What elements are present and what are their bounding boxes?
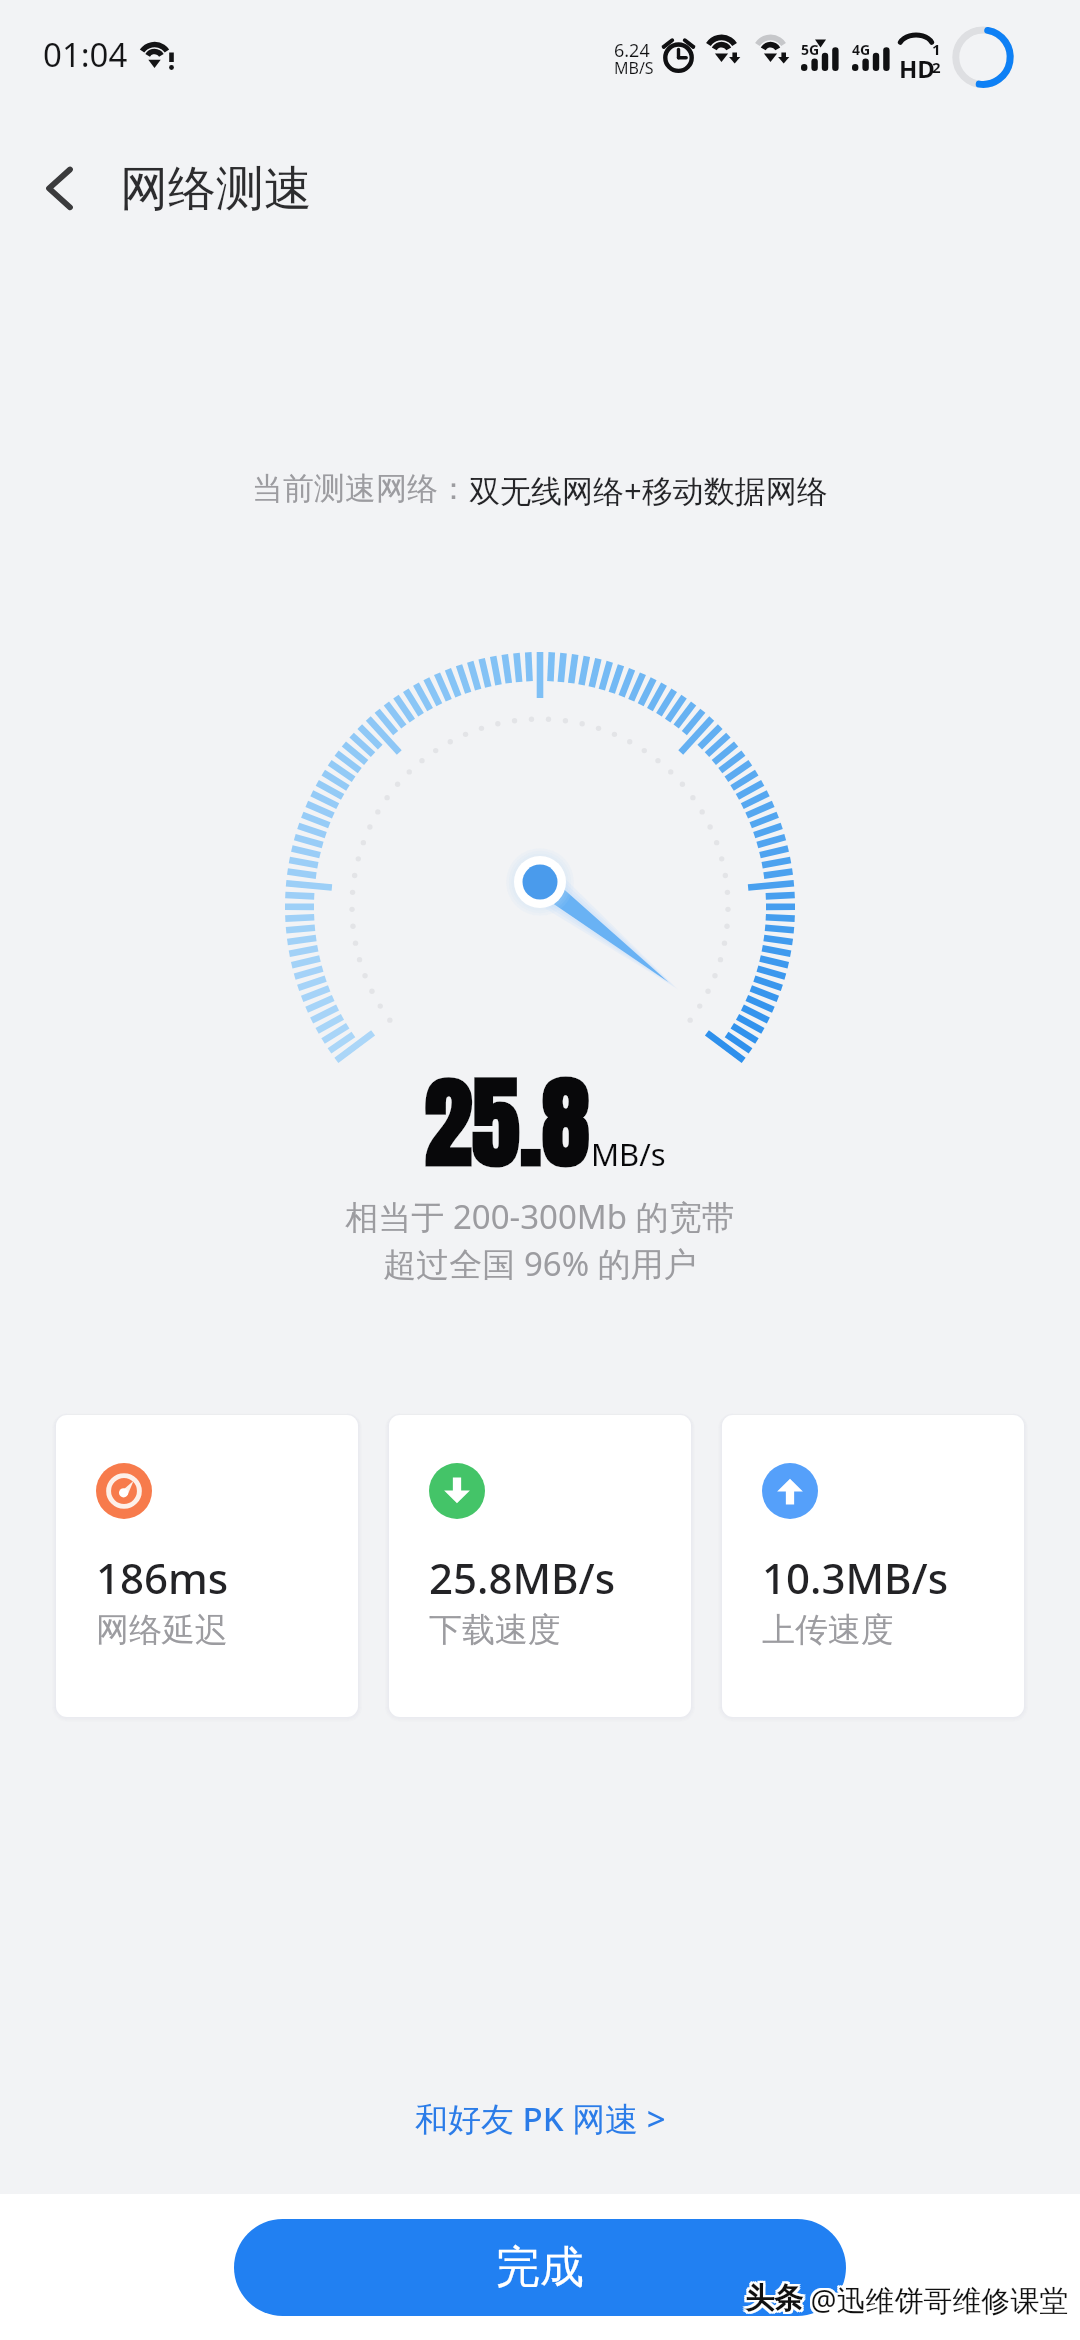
staticText: @迅维饼哥维修课堂 <box>801 2280 1067 2320</box>
button[interactable]: 和好友 PK 网速 > <box>0 2065 1080 2171</box>
staticText: 头条 <box>747 2282 805 2319</box>
staticText: 01:04 <box>43 32 128 77</box>
staticText: 相当于 200-300Mb 的宽带 超过全国 96% 的用户 <box>0 1194 1080 1286</box>
staticText: @迅维饼哥维修课堂 <box>803 2280 1069 2320</box>
staticText: 上传速度 <box>762 1609 894 1651</box>
staticText: 和好友 PK 网速 > <box>415 2096 666 2141</box>
staticText: MB/S <box>614 57 654 79</box>
staticText: @迅维饼哥维修课堂 <box>803 2278 1069 2318</box>
staticText: 头条 <box>747 2280 805 2317</box>
button[interactable]: Back <box>8 128 112 248</box>
staticText: 完成 <box>496 2240 584 2295</box>
staticText: 2 <box>932 57 941 77</box>
staticText: 网络延迟 <box>96 1609 228 1651</box>
staticText: 25.8 <box>424 1048 590 1198</box>
staticText: @迅维饼哥维修课堂 <box>805 2278 1071 2318</box>
staticText: 头条 <box>745 2280 803 2317</box>
staticText: MB/s <box>591 1133 666 1175</box>
staticText: @迅维饼哥维修课堂 <box>805 2280 1071 2320</box>
staticText: 网络测速 <box>120 159 312 219</box>
button[interactable]: 10.3MB/s <box>722 1415 1024 1717</box>
staticText: 6.24 <box>614 38 650 63</box>
staticText: @迅维饼哥维修课堂 <box>803 2282 1069 2322</box>
staticText: 4G <box>852 40 871 59</box>
staticText: 下载速度 <box>429 1609 561 1651</box>
button[interactable]: 完成 <box>234 2219 846 2316</box>
staticText: 1 <box>932 39 941 59</box>
staticText: 头条 <box>747 2278 805 2315</box>
staticText: 10.3MB/s <box>762 1549 949 1606</box>
staticText: 186ms <box>96 1549 229 1606</box>
staticText: 头条 <box>743 2278 801 2315</box>
staticText: 头条 <box>745 2278 803 2315</box>
staticText: 5G <box>801 40 820 59</box>
staticText: @迅维饼哥维修课堂 <box>801 2278 1067 2318</box>
staticText: 当前测速网络： <box>252 469 469 508</box>
button[interactable]: 25.8MB/s <box>389 1415 691 1717</box>
staticText: @迅维饼哥维修课堂 <box>801 2282 1067 2322</box>
staticText: 头条 <box>745 2282 803 2319</box>
staticText: HD <box>899 52 935 85</box>
staticText: 双无线网络+移动数据网络 <box>469 469 828 511</box>
staticText: 25.8MB/s <box>429 1549 616 1606</box>
staticText: 头条 <box>743 2280 801 2317</box>
staticText: 头条 <box>743 2282 801 2319</box>
staticText: @迅维饼哥维修课堂 <box>805 2282 1071 2322</box>
button[interactable]: 186ms <box>56 1415 358 1717</box>
